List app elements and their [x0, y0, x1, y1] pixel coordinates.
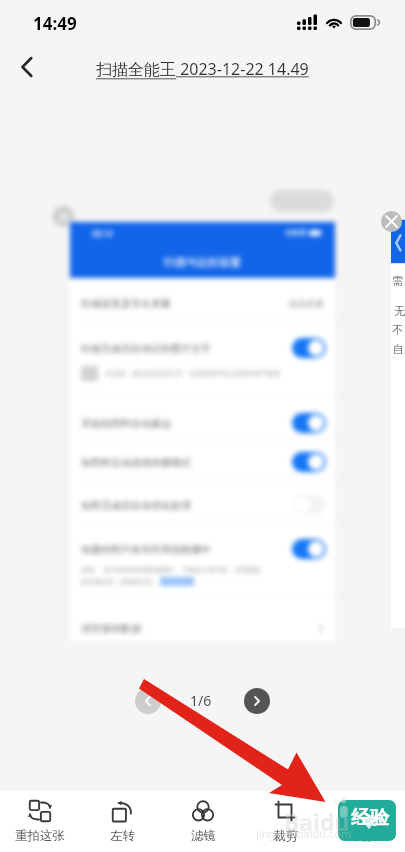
staticText: 无	[394, 304, 405, 318]
button[interactable]: 经验	[338, 800, 396, 841]
staticText: 照片将保存到系统相册中，可能会占用手机	[104, 566, 228, 574]
button[interactable]: Back	[6, 46, 48, 88]
staticText: 扫描与识别设置	[164, 255, 241, 269]
button[interactable]: Previous page	[135, 688, 161, 714]
staticText: 重拍这张	[15, 828, 65, 844]
button[interactable]: 更多	[326, 791, 405, 844]
staticText: 裁剪	[273, 828, 298, 844]
staticText: 左转	[110, 828, 135, 844]
staticText: 高清质量	[288, 298, 324, 309]
staticText: 的存储空间，请谨慎开启	[81, 578, 153, 586]
staticText: 不	[392, 323, 403, 337]
staticText: 全网通	[285, 228, 306, 237]
staticText: 开始拍照时自动裁边	[81, 417, 171, 430]
staticText: Baidu	[284, 806, 350, 837]
button[interactable]: 裁剪	[245, 791, 325, 844]
staticText: 空间较多	[235, 566, 261, 574]
staticText: 滤镜	[191, 828, 216, 844]
staticText: 自	[393, 342, 404, 356]
staticText: 说明：	[81, 566, 101, 574]
staticText: 扫描设置及导出质量	[81, 297, 171, 310]
button[interactable]: 扫描全能王 2023-12-22 14.49	[96, 58, 309, 80]
button[interactable]: 重拍这张	[0, 791, 80, 844]
staticText: 拍摄的照片保存到系统相册中	[81, 543, 211, 556]
button[interactable]: Close	[381, 211, 402, 232]
staticText: jingyan.baidu.com	[256, 826, 352, 841]
staticText: 拍照时自动连续拍摄模式	[81, 456, 191, 469]
button[interactable]: 左转	[82, 791, 162, 844]
staticText: 扫描完成后自动识别图片文字	[81, 342, 211, 355]
staticText: 08:14	[92, 228, 113, 239]
staticText: 需	[392, 274, 403, 288]
staticText: 开启后，将自动识别文字，识别结果可在文档详情中查看	[105, 369, 280, 378]
staticText: 拍照完成后自动优化处理	[81, 499, 191, 512]
button[interactable]: 滤镜	[163, 791, 243, 844]
staticText: 清空缓存数据	[81, 622, 141, 635]
staticText: 14:49	[33, 12, 77, 35]
staticText: 更多	[354, 828, 379, 844]
button[interactable]: Next page	[244, 688, 270, 714]
staticText: 扫描全能王 2023-12-22 14.49	[96, 58, 309, 80]
staticText: 经验	[351, 806, 389, 830]
staticText: 1/6	[190, 691, 212, 710]
